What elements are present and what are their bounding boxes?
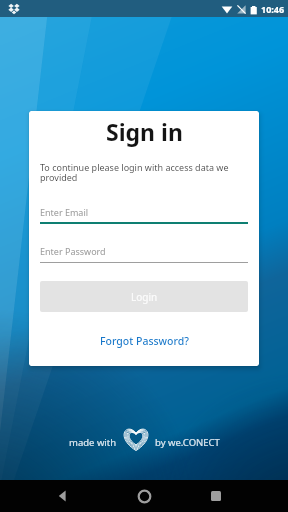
staticText: by we.CONECT (155, 436, 220, 449)
staticText: 10:46 (261, 3, 285, 15)
button[interactable]: Forgot Password? (96, 330, 193, 352)
staticText: Enter Email (40, 206, 248, 218)
staticText: made with (69, 436, 117, 449)
staticText: To continue please login with access dat… (40, 161, 248, 184)
button[interactable] (206, 486, 226, 506)
staticText: Forgot Password? (100, 334, 189, 348)
button[interactable] (134, 486, 154, 506)
staticText: Enter Password (40, 245, 248, 257)
button[interactable] (53, 486, 73, 506)
staticText: Login (131, 290, 158, 304)
staticText: Sign in (106, 116, 183, 147)
